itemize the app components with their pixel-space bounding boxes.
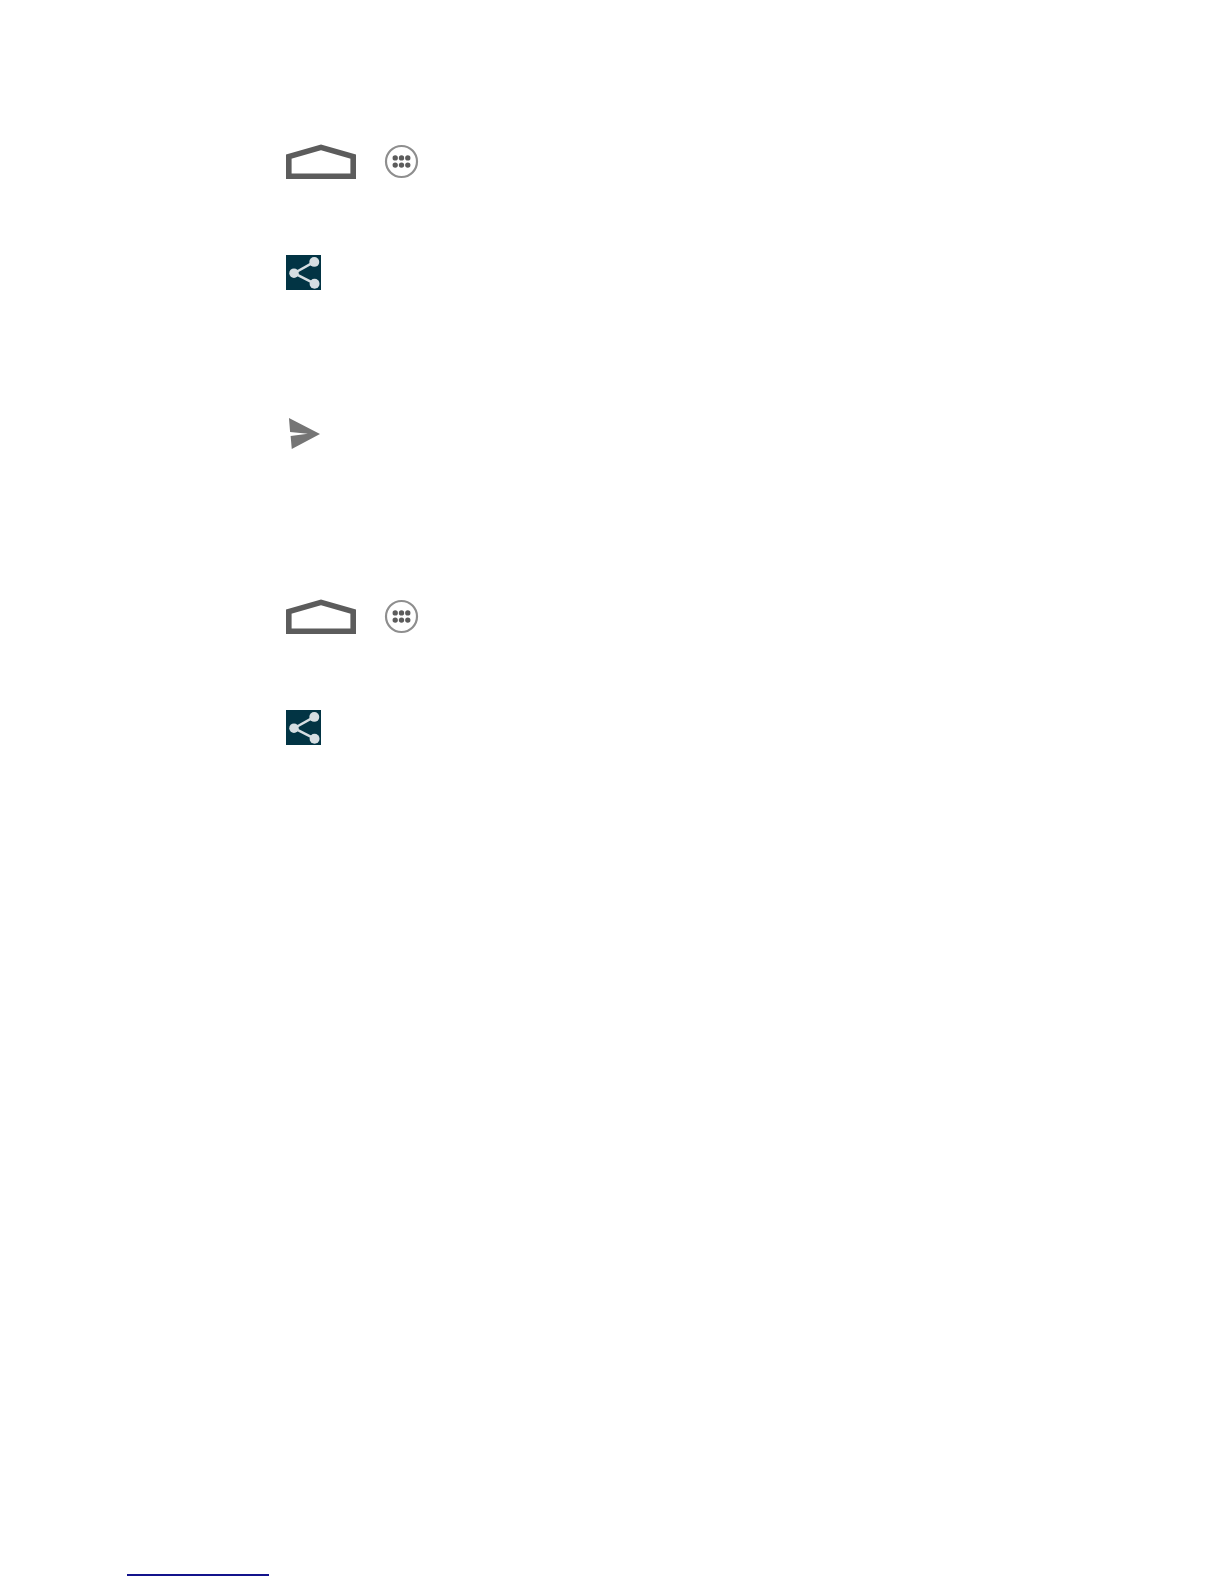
button[interactable]: Share [286,710,321,745]
button[interactable]: Home [286,599,356,634]
button[interactable]: Apps [384,599,419,634]
button[interactable]: Home [286,144,356,179]
button[interactable]: Open link [127,1558,269,1576]
button[interactable]: Apps [384,144,419,179]
button[interactable]: Send [288,418,320,449]
button[interactable]: Share [286,255,321,290]
